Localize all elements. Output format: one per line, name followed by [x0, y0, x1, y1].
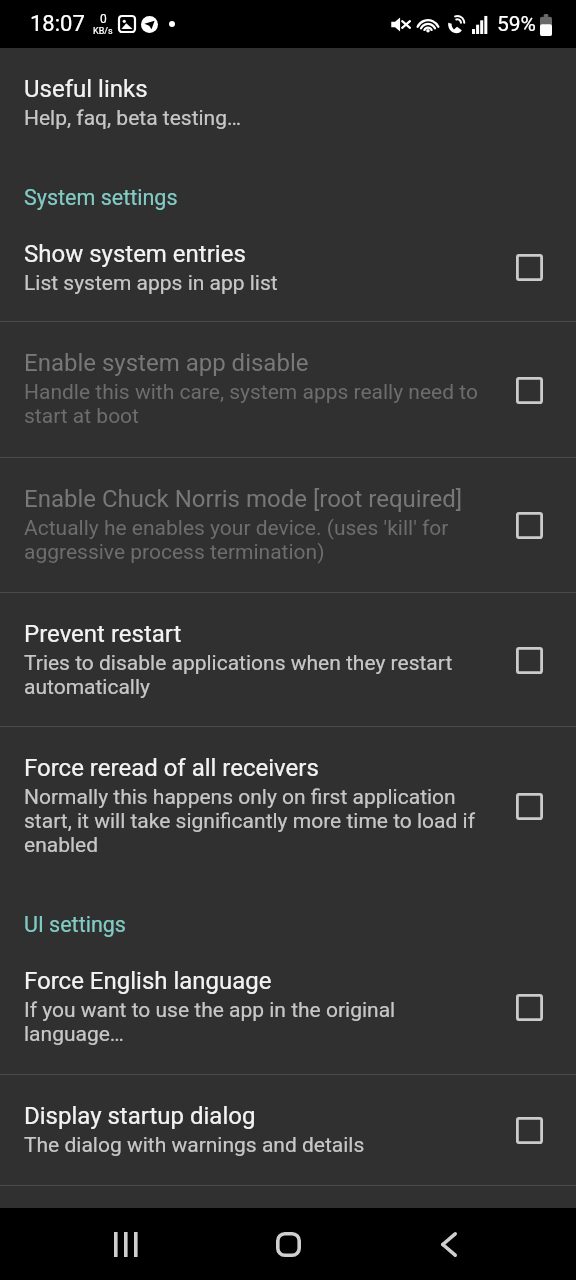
staticText: KB/s: [93, 26, 113, 37]
button[interactable]: Display startup dialog: [507, 1108, 551, 1152]
button[interactable]: Enable system app disable: [0, 322, 576, 457]
staticText: Actually he enables your device. (uses '…: [24, 516, 496, 564]
staticText: Useful links: [24, 75, 148, 103]
staticText: Handle this with care, system apps reall…: [24, 380, 496, 428]
staticText: Enable system app disable: [24, 349, 309, 377]
button[interactable]: Enable Chuck Norris mode [root required]: [0, 458, 576, 592]
button[interactable]: Enable system app disable: [507, 368, 551, 412]
button[interactable]: Prevent restart: [0, 593, 576, 726]
button[interactable]: Prevent restart: [507, 638, 551, 682]
button[interactable]: Show system entries: [0, 213, 576, 321]
staticText: Enable Chuck Norris mode [root required]: [24, 485, 463, 513]
button[interactable]: Back: [401, 1208, 497, 1280]
staticText: List system apps in app list: [24, 271, 278, 296]
button[interactable]: Show system entries: [507, 245, 551, 289]
staticText: 59%: [497, 12, 536, 37]
staticText: If you want to use the app in the origin…: [24, 998, 496, 1046]
staticText: 18:07: [30, 11, 85, 37]
staticText: Prevent restart: [24, 620, 182, 648]
button[interactable]: Force reread of all receivers: [0, 727, 576, 885]
staticText: Force reread of all receivers: [24, 754, 319, 782]
staticText: Help, faq, beta testing…: [24, 106, 242, 131]
staticText: Normally this happens only on first appl…: [24, 785, 496, 857]
button[interactable]: Force English language: [507, 985, 551, 1029]
staticText: Tries to disable applications when they …: [24, 651, 496, 699]
staticText: System settings: [24, 185, 178, 210]
button[interactable]: Enable Chuck Norris mode [root required]: [507, 503, 551, 547]
button[interactable]: Display startup dialog: [0, 1075, 576, 1185]
button[interactable]: Force reread of all receivers: [507, 784, 551, 828]
button[interactable]: Force English language: [0, 940, 576, 1074]
button[interactable]: Home: [240, 1208, 336, 1280]
staticText: UI settings: [24, 912, 126, 937]
button[interactable]: Useful links: [0, 48, 576, 156]
staticText: The dialog with warnings and details: [24, 1133, 365, 1158]
staticText: Show system entries: [24, 240, 246, 268]
staticText: Display startup dialog: [24, 1102, 256, 1130]
staticText: 0: [100, 12, 107, 26]
staticText: Force English language: [24, 967, 272, 995]
button[interactable]: Recent apps: [78, 1208, 174, 1280]
